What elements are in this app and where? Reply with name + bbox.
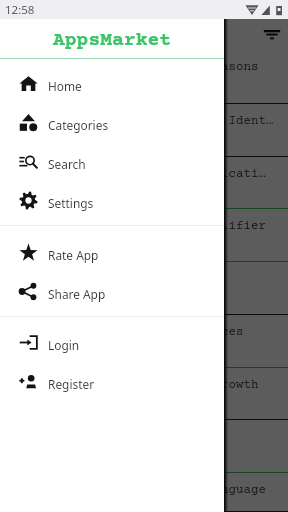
button[interactable]: Categories [0, 102, 225, 141]
staticText: AppsMarket [53, 30, 172, 52]
staticText: 12:58 [5, 2, 35, 18]
staticText: Communicati… [176, 167, 266, 181]
staticText: Search [48, 156, 86, 172]
staticText: An Amplifier [176, 219, 266, 233]
staticText: Rate App [48, 247, 99, 263]
staticText: Home [48, 78, 82, 94]
button[interactable]: Share App [0, 271, 225, 310]
staticText: All Language [176, 483, 266, 497]
staticText: Share App [48, 286, 106, 302]
staticText: AppsMarket [85, 30, 204, 52]
staticText: Easy Growth [176, 378, 259, 392]
button[interactable]: Filter [259, 26, 285, 52]
button[interactable]: Rate App [0, 232, 225, 271]
staticText: Login [48, 337, 80, 353]
button[interactable]: An Amplifier [0, 210, 288, 262]
button[interactable]: Register [0, 361, 225, 400]
staticText: How to Ident… [176, 114, 274, 128]
button[interactable]: Home [0, 63, 225, 102]
button[interactable]: Resources [0, 316, 288, 368]
staticText: Top Reasons [176, 60, 259, 74]
button[interactable]: All Language [0, 474, 288, 512]
button[interactable]: Tools [0, 421, 288, 473]
button[interactable]: How to Ident… [0, 105, 288, 157]
button[interactable]: Login [0, 322, 225, 361]
button[interactable]: Communicati… [0, 158, 288, 209]
staticText: Categories [48, 117, 109, 133]
button[interactable]: Search [0, 141, 225, 180]
button[interactable]: Easy Growth [0, 369, 288, 420]
button[interactable]: Top Reasons [0, 51, 288, 104]
staticText: Settings [48, 195, 94, 211]
button[interactable]: Sound [0, 263, 288, 315]
staticText: Resources [176, 325, 244, 339]
button[interactable]: Settings [0, 180, 225, 219]
staticText: Register [48, 376, 95, 392]
